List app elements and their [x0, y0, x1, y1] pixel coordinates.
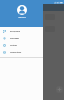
- staticText: Information: [10, 51, 22, 54]
- button[interactable]: Add: [56, 86, 63, 93]
- staticText: Dashboard: [10, 30, 20, 33]
- staticText: Notices: [10, 44, 17, 47]
- staticText: username: [18, 16, 26, 18]
- staticText: Messages: [10, 37, 19, 40]
- button[interactable]: Profile: [17, 5, 27, 15]
- button[interactable]: Messages: [0, 35, 43, 42]
- button[interactable]: Dashboard: [0, 28, 43, 35]
- button[interactable]: Information: [0, 49, 43, 56]
- button[interactable]: Notices: [0, 42, 43, 49]
